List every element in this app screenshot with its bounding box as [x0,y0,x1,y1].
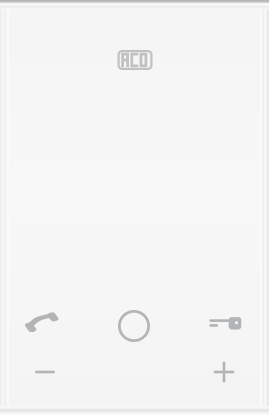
button[interactable]: Volume up [189,352,259,392]
button[interactable]: Mute microphone [97,303,171,349]
button[interactable]: Volume down [10,352,80,392]
button[interactable]: Open door [188,300,262,346]
button[interactable]: Answer call [6,299,80,345]
